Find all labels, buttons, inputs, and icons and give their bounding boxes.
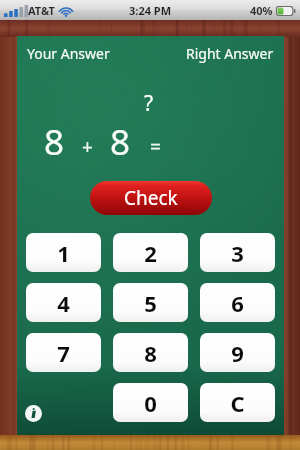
button[interactable]: Your Answer	[27, 44, 110, 63]
button[interactable]: 8	[113, 333, 188, 372]
staticText: 6	[231, 288, 244, 318]
button[interactable]: Info	[21, 401, 45, 425]
button[interactable]: 6	[200, 283, 275, 322]
staticText: 4	[57, 288, 70, 318]
staticText: ?	[144, 89, 154, 118]
staticText: 40%	[250, 3, 273, 18]
button[interactable]: 1	[26, 233, 101, 272]
staticText: Your Answer	[27, 44, 110, 63]
button[interactable]: 0	[113, 383, 188, 422]
button[interactable]: 5	[113, 283, 188, 322]
staticText: 8	[144, 338, 157, 368]
button[interactable]: C	[200, 383, 275, 422]
staticText: 8	[44, 118, 65, 166]
staticText: Check	[124, 185, 178, 211]
staticText: C	[230, 388, 245, 418]
staticText: 8	[110, 118, 131, 166]
staticText: +	[82, 134, 93, 160]
staticText: =	[150, 134, 161, 160]
staticText: 3:24 PM	[129, 3, 172, 18]
staticText: 3	[231, 238, 244, 268]
button[interactable]: 3	[200, 233, 275, 272]
button[interactable]: Right Answer	[186, 44, 274, 63]
button[interactable]: 7	[26, 333, 101, 372]
staticText: Right Answer	[186, 44, 274, 63]
staticText: 1	[57, 238, 70, 268]
staticText: 5	[144, 288, 157, 318]
button[interactable]: 9	[200, 333, 275, 372]
button[interactable]: 2	[113, 233, 188, 272]
button[interactable]: 4	[26, 283, 101, 322]
button[interactable]: Check	[90, 181, 212, 215]
staticText: 7	[57, 338, 70, 368]
staticText: 0	[144, 388, 157, 418]
staticText: AT&T	[28, 3, 55, 18]
staticText: 9	[231, 338, 244, 368]
staticText: 2	[144, 238, 157, 268]
